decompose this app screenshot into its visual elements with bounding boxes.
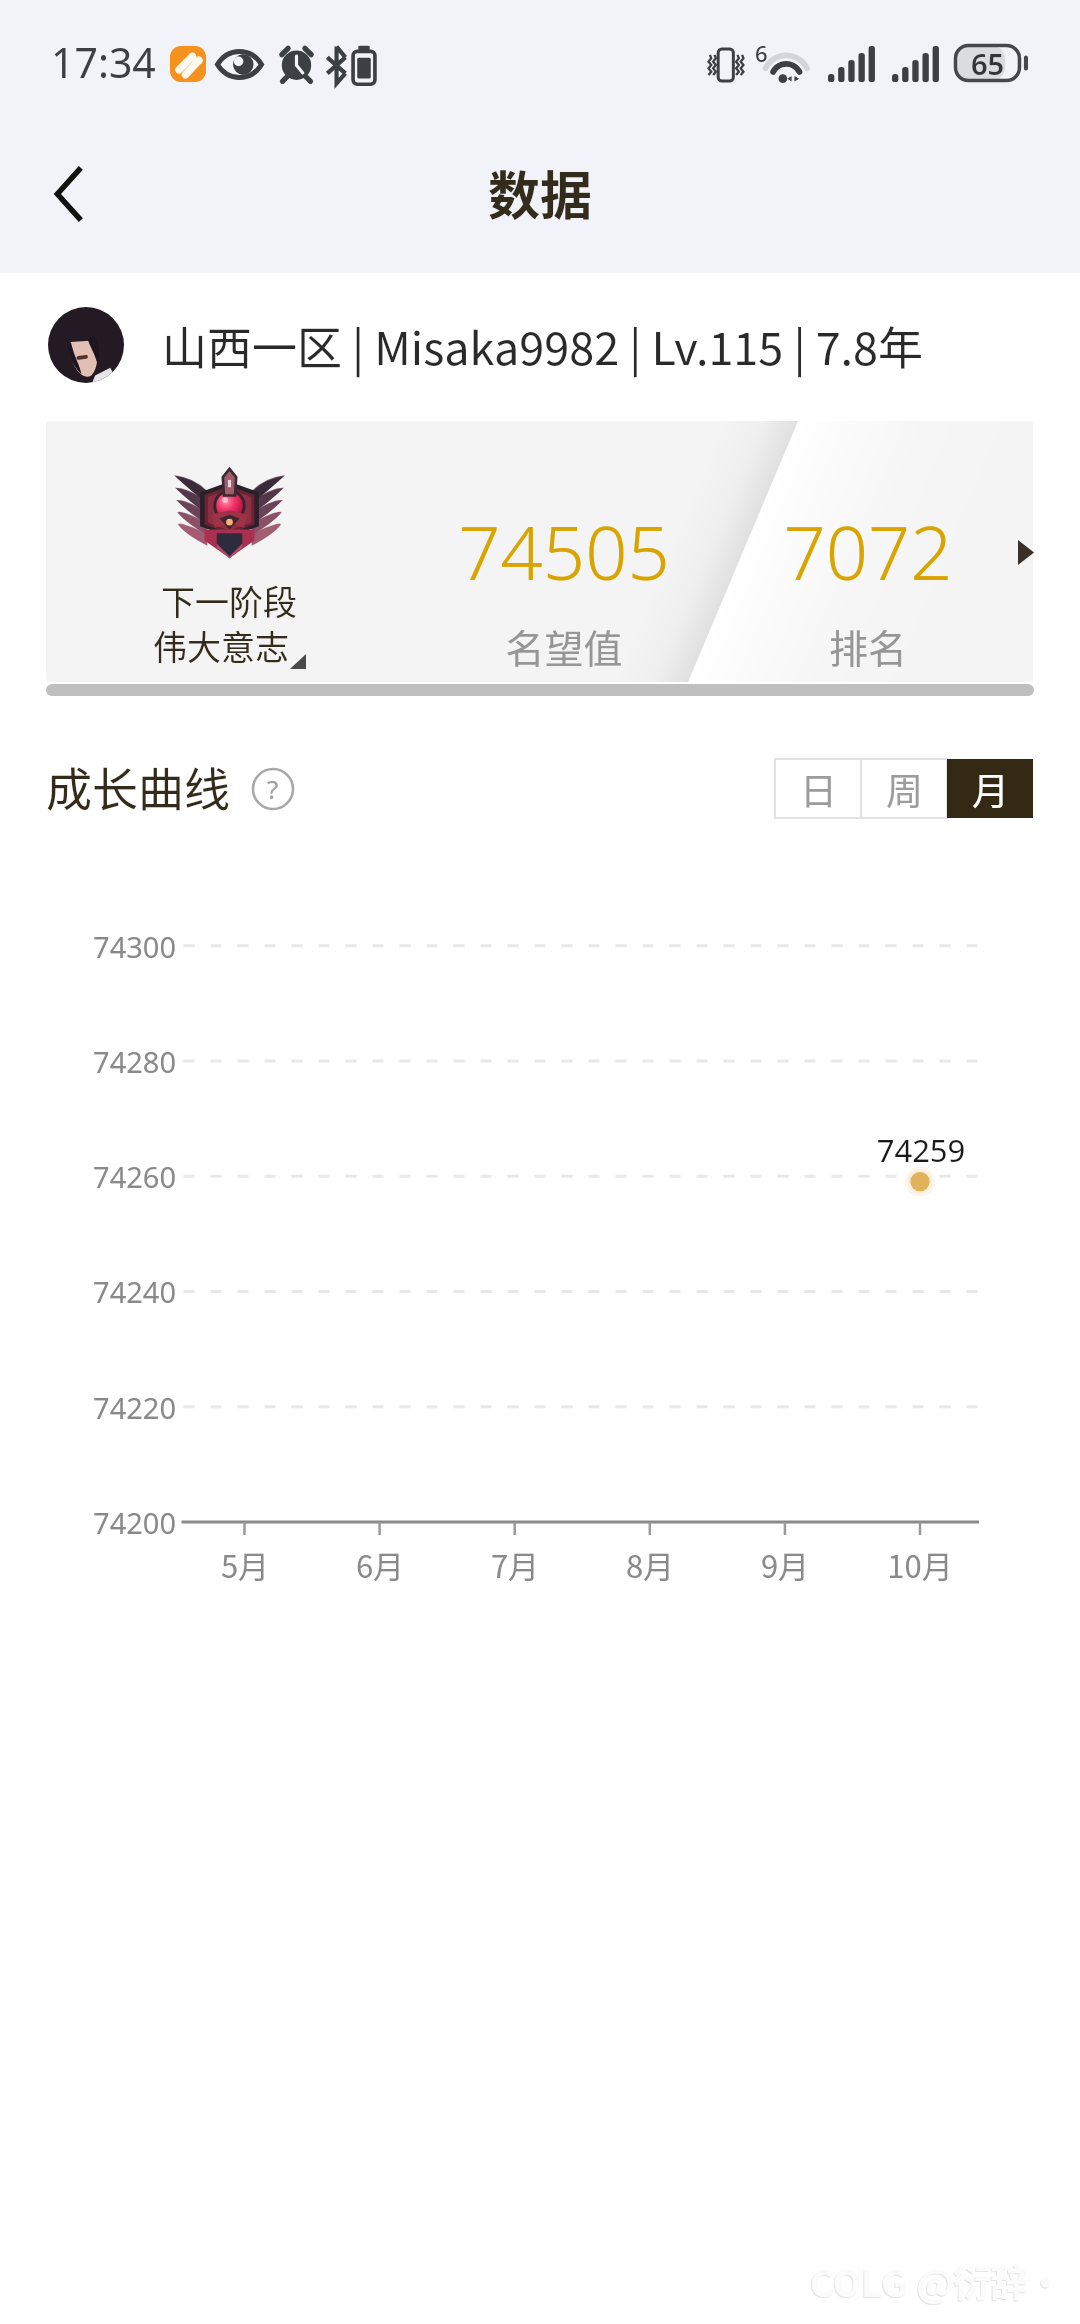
staticText: 伟大意志 [153, 621, 289, 670]
button[interactable]: 下一阶段 [46, 421, 1033, 682]
staticText: 成长曲线 [46, 753, 230, 820]
staticText: 74300 [16, 927, 176, 966]
staticText: 74505 [404, 501, 724, 602]
button[interactable]: 山西一区 | Misaka9982 | Lv.115 | 7.8年 [0, 297, 1080, 393]
staticText: 74240 [16, 1272, 176, 1311]
staticText: ? [267, 771, 279, 806]
staticText: 6月 [320, 1542, 440, 1587]
button[interactable]: 周 [861, 759, 947, 818]
staticText: COLG @衍辞· [810, 2254, 1065, 2308]
staticText: 名望值 [404, 618, 724, 674]
button[interactable]: Back [20, 144, 120, 244]
staticText: 74280 [16, 1042, 176, 1081]
staticText: 7072 [708, 501, 1028, 602]
staticText: 10月 [860, 1542, 980, 1587]
staticText: 74200 [16, 1503, 176, 1542]
staticText: 9月 [725, 1542, 845, 1587]
staticText: 下一阶段 [161, 576, 297, 625]
staticText: 月 [972, 762, 1009, 816]
staticText: 74259 [861, 1129, 981, 1171]
button[interactable]: 月 [947, 759, 1033, 818]
staticText: 排名 [708, 618, 1028, 674]
staticText: 8月 [590, 1542, 710, 1587]
staticText: 74220 [16, 1388, 176, 1427]
staticText: 山西一区 | Misaka9982 | Lv.115 | 7.8年 [162, 313, 924, 378]
button[interactable]: 日 [775, 759, 861, 818]
staticText: 日 [800, 762, 837, 816]
staticText: 74260 [16, 1157, 176, 1196]
staticText: 周 [886, 762, 923, 816]
button[interactable]: Help [247, 763, 299, 815]
staticText: COLG @衍辞· [809, 2255, 1064, 2309]
staticText: 数据 [488, 155, 593, 230]
staticText: 17:34 [51, 34, 156, 90]
staticText: 65 [971, 44, 1005, 82]
staticText: 5月 [185, 1542, 305, 1587]
staticText: 7月 [455, 1542, 575, 1587]
staticText: 6 [755, 38, 768, 68]
